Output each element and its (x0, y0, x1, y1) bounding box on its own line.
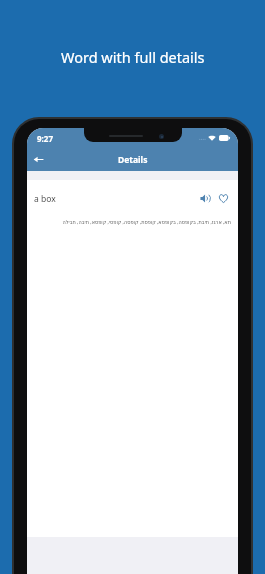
button[interactable]: Pronounce (198, 191, 213, 206)
staticText: 9:27 (37, 133, 53, 144)
button[interactable]: Back (30, 151, 47, 168)
staticText: תא, ארגז, תיבת, בקופסה, בקופסא, קופסת, ק… (34, 219, 231, 226)
staticText: Word with full details (61, 47, 205, 67)
staticText: Details (118, 154, 148, 166)
staticText: a box (34, 193, 56, 205)
button[interactable]: Add to favorites (216, 191, 231, 206)
